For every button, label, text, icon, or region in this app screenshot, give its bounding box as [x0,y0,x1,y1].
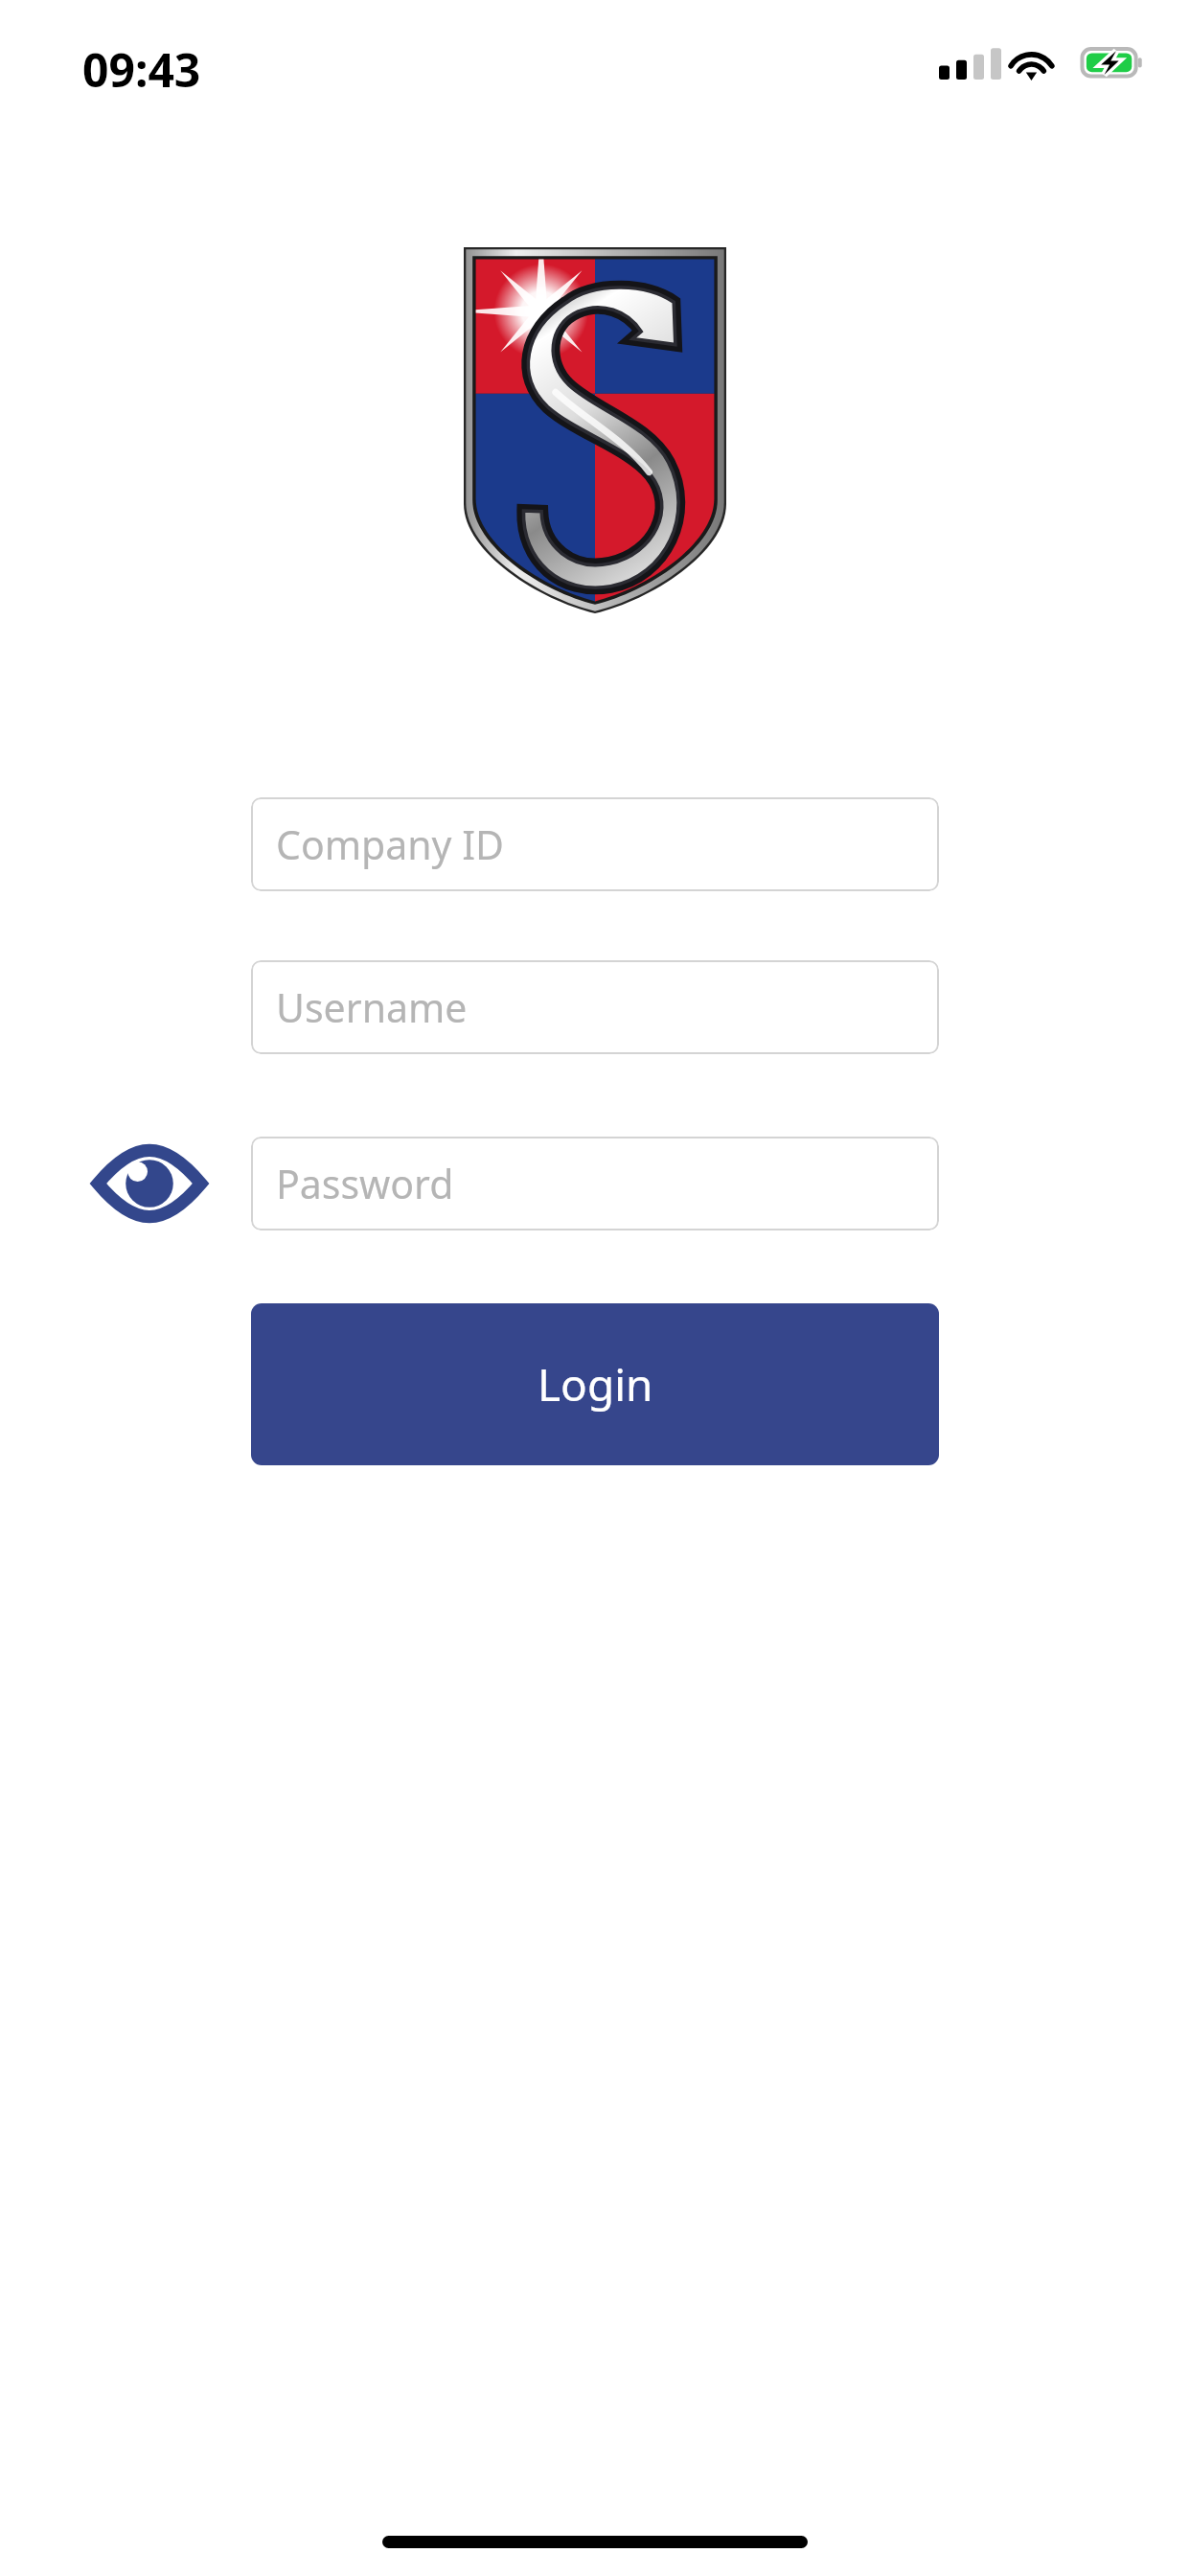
button[interactable]: Show password [77,1130,222,1237]
staticText: Company ID [276,817,505,871]
button[interactable]: Login [251,1303,939,1465]
button[interactable]: Password [251,1137,939,1230]
button[interactable]: Username [251,960,939,1054]
staticText: Password [276,1157,454,1210]
staticText: Username [276,980,468,1034]
button[interactable]: Company ID [251,797,939,891]
staticText: 09:43 [82,38,201,101]
staticText: Login [538,1354,653,1414]
